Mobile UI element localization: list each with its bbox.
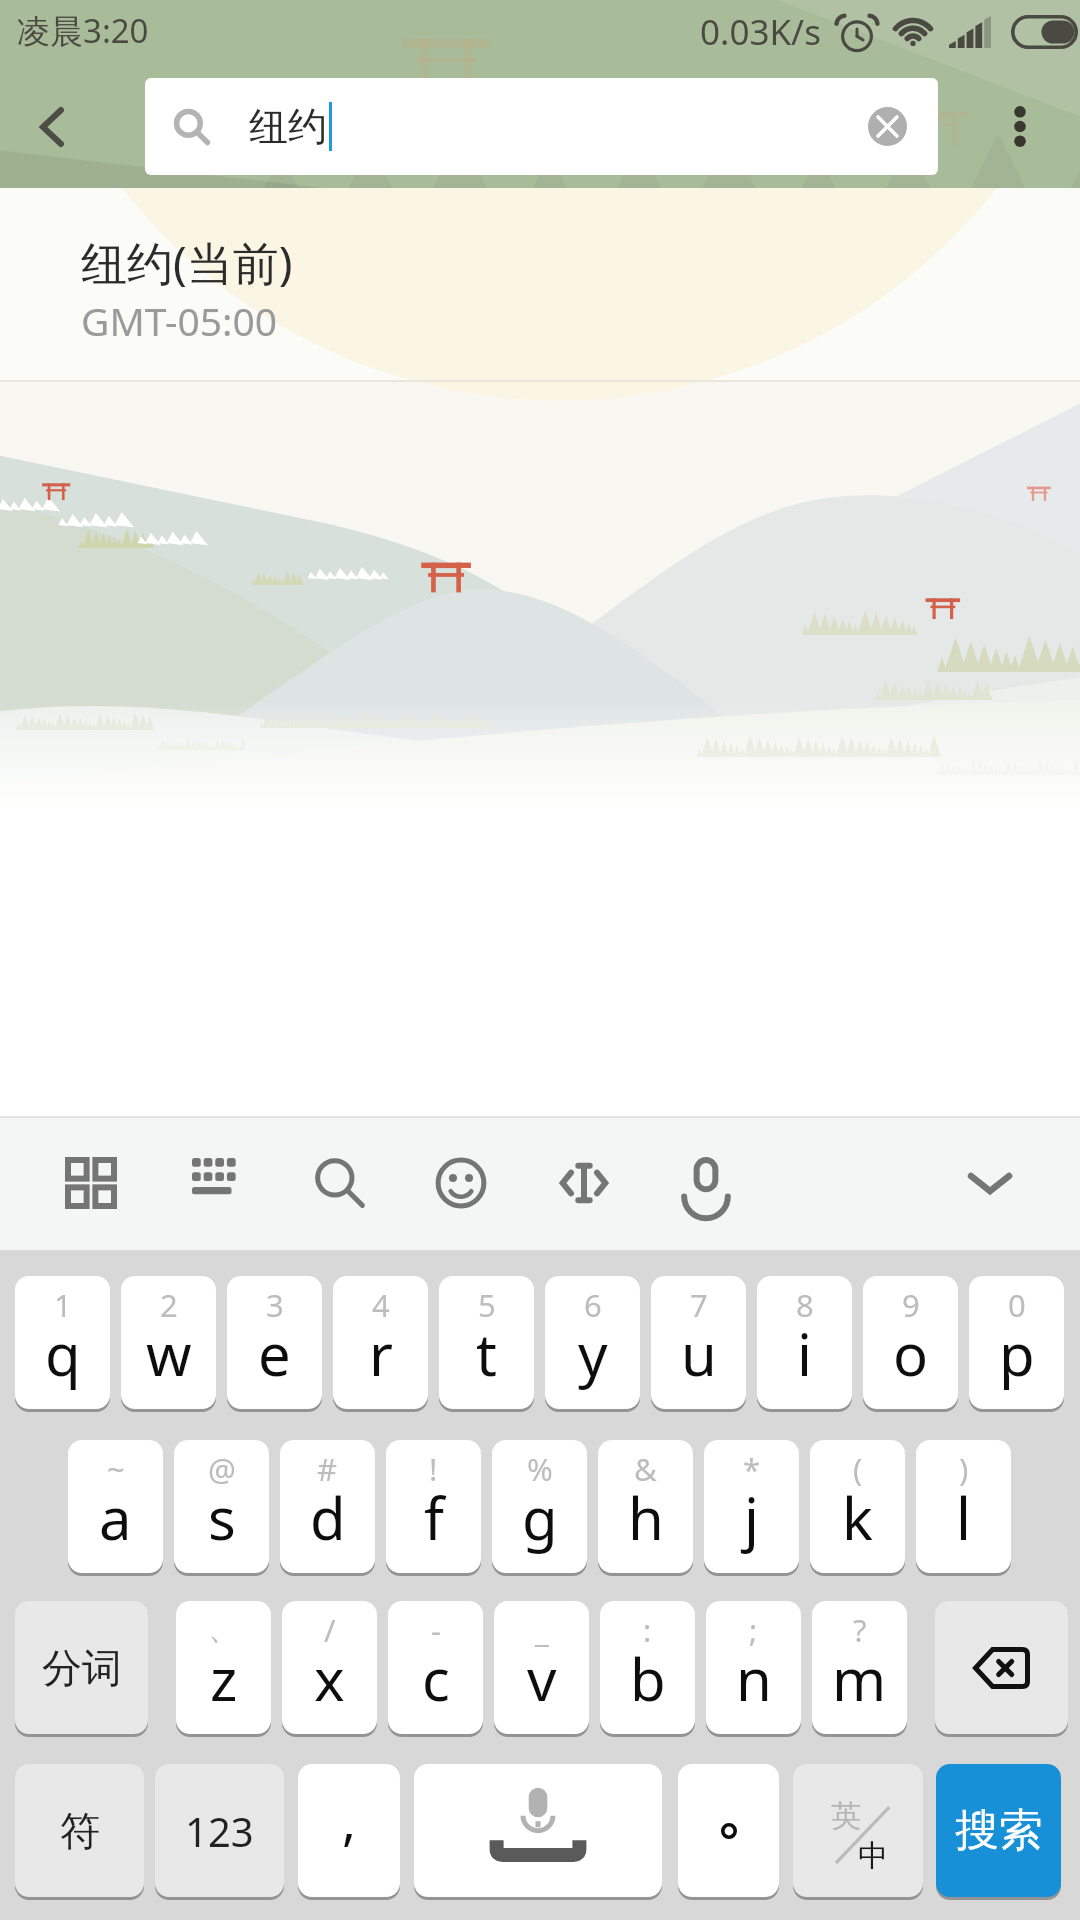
staticText: - [431,1609,441,1651]
button[interactable]: 纽约 [145,78,938,175]
button[interactable]: ( [810,1440,905,1573]
staticText: l [956,1478,971,1557]
staticText: 纽约(当前) [81,231,293,294]
button[interactable]: ? [812,1601,907,1734]
other: Space [414,1764,662,1900]
button[interactable]: 5 [439,1276,534,1409]
staticText: u [681,1314,717,1393]
staticText: ? [853,1609,867,1651]
staticText: 、 [208,1609,239,1648]
staticText: 3 [266,1284,284,1326]
staticText: o [893,1314,929,1393]
staticText: v [527,1639,557,1718]
button[interactable]: Clear text [868,107,907,146]
button[interactable]: / [282,1601,377,1734]
staticText: % [527,1448,553,1490]
staticText: d [310,1478,346,1557]
staticText: 7 [690,1284,708,1326]
button[interactable]: Emoji [415,1137,507,1229]
staticText: n [736,1639,772,1718]
button[interactable]: Move cursor [538,1137,630,1229]
staticText: 凌晨3:20 [17,8,149,53]
staticText: a [99,1478,132,1557]
button[interactable]: 8 [757,1276,852,1409]
staticText: 分词 [42,1643,122,1693]
staticText: ) [959,1448,969,1490]
button[interactable]: Search [294,1137,386,1229]
button[interactable]: Switch keyboard [171,1137,263,1229]
staticText: 6 [584,1284,602,1326]
staticText: z [210,1639,238,1718]
button[interactable]: Voice input [660,1137,752,1229]
other: Comma [298,1764,400,1900]
button[interactable]: - [388,1601,483,1734]
button[interactable]: & [598,1440,693,1573]
button[interactable]: Hide keyboard [944,1137,1036,1229]
button[interactable]: ; [706,1601,801,1734]
staticText: s [208,1478,236,1557]
button[interactable]: More options [980,78,1060,175]
staticText: 0.03K/s [700,8,821,56]
button[interactable]: , [298,1764,400,1897]
button[interactable]: 符 [15,1764,144,1897]
staticText: * [743,1448,761,1490]
button[interactable]: 0 [969,1276,1064,1409]
staticText: q [45,1314,81,1393]
staticText: b [630,1639,666,1718]
button[interactable]: 英 [793,1764,923,1897]
staticText: GMT-05:00 [81,294,278,347]
button[interactable]: 3 [227,1276,322,1409]
staticText: p [999,1314,1035,1393]
staticText: t [476,1314,497,1393]
button[interactable]: @ [174,1440,269,1573]
staticText: x [314,1639,345,1718]
button[interactable]: _ [494,1601,589,1734]
button[interactable]: ~ [68,1440,163,1573]
staticText: e [258,1314,291,1393]
button[interactable]: 9 [863,1276,958,1409]
button[interactable]: 7 [651,1276,746,1409]
button[interactable]: * [704,1440,799,1573]
staticText: ! [429,1448,438,1490]
button[interactable]: 6 [545,1276,640,1409]
staticText: ( [853,1448,863,1490]
button[interactable]: 搜索 [936,1764,1061,1897]
button[interactable]: 分词 [15,1601,148,1734]
staticText: 英 [831,1797,861,1835]
staticText: 1 [54,1284,72,1326]
button[interactable]: # [280,1440,375,1573]
button[interactable]: 、 [176,1601,271,1734]
button[interactable] [414,1764,662,1897]
other: Backspace [935,1601,1068,1737]
button[interactable]: 1 [15,1276,110,1409]
button[interactable]: 2 [121,1276,216,1409]
staticText: _ [535,1609,549,1651]
staticText: 中 [858,1837,888,1875]
staticText: k [842,1478,873,1557]
staticText: 0 [1008,1284,1026,1326]
staticText: @ [208,1448,236,1490]
button[interactable]: : [600,1601,695,1734]
button[interactable]: Symbols panel [45,1137,137,1229]
staticText: & [634,1448,657,1490]
staticText: g [522,1478,558,1557]
staticText: 纽约 [249,102,327,151]
button[interactable]: 纽约(当前) [0,188,1080,382]
other: Switch language [793,1764,923,1900]
staticText: 4 [372,1284,390,1326]
button[interactable]: % [492,1440,587,1573]
button[interactable] [935,1601,1068,1734]
staticText: : [643,1609,652,1651]
staticText: y [578,1314,608,1393]
button[interactable]: 123 [155,1764,284,1897]
staticText: 搜索 [955,1803,1043,1858]
staticText: 符 [60,1806,100,1856]
button[interactable]: 4 [333,1276,428,1409]
button[interactable]: ! [386,1440,481,1573]
staticText: 8 [796,1284,814,1326]
button[interactable]: Back [16,78,88,175]
staticText: f [424,1478,444,1557]
button[interactable]: ) [916,1440,1011,1573]
staticText: c [422,1639,450,1718]
button[interactable] [678,1764,779,1897]
